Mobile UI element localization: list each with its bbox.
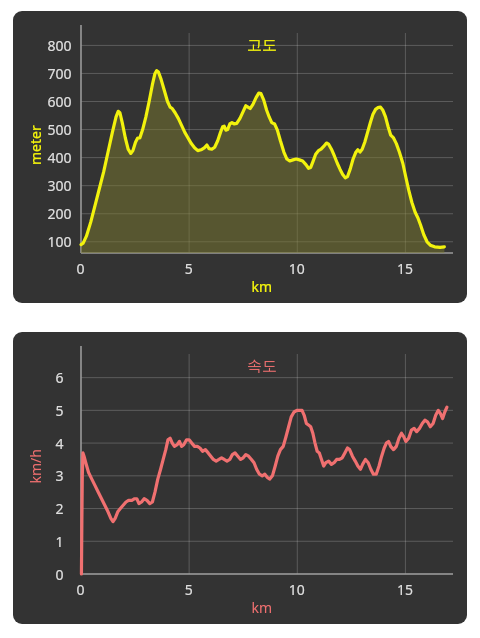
button[interactable]: 고도 xyxy=(13,11,467,303)
button[interactable]: 속도 xyxy=(13,332,467,624)
